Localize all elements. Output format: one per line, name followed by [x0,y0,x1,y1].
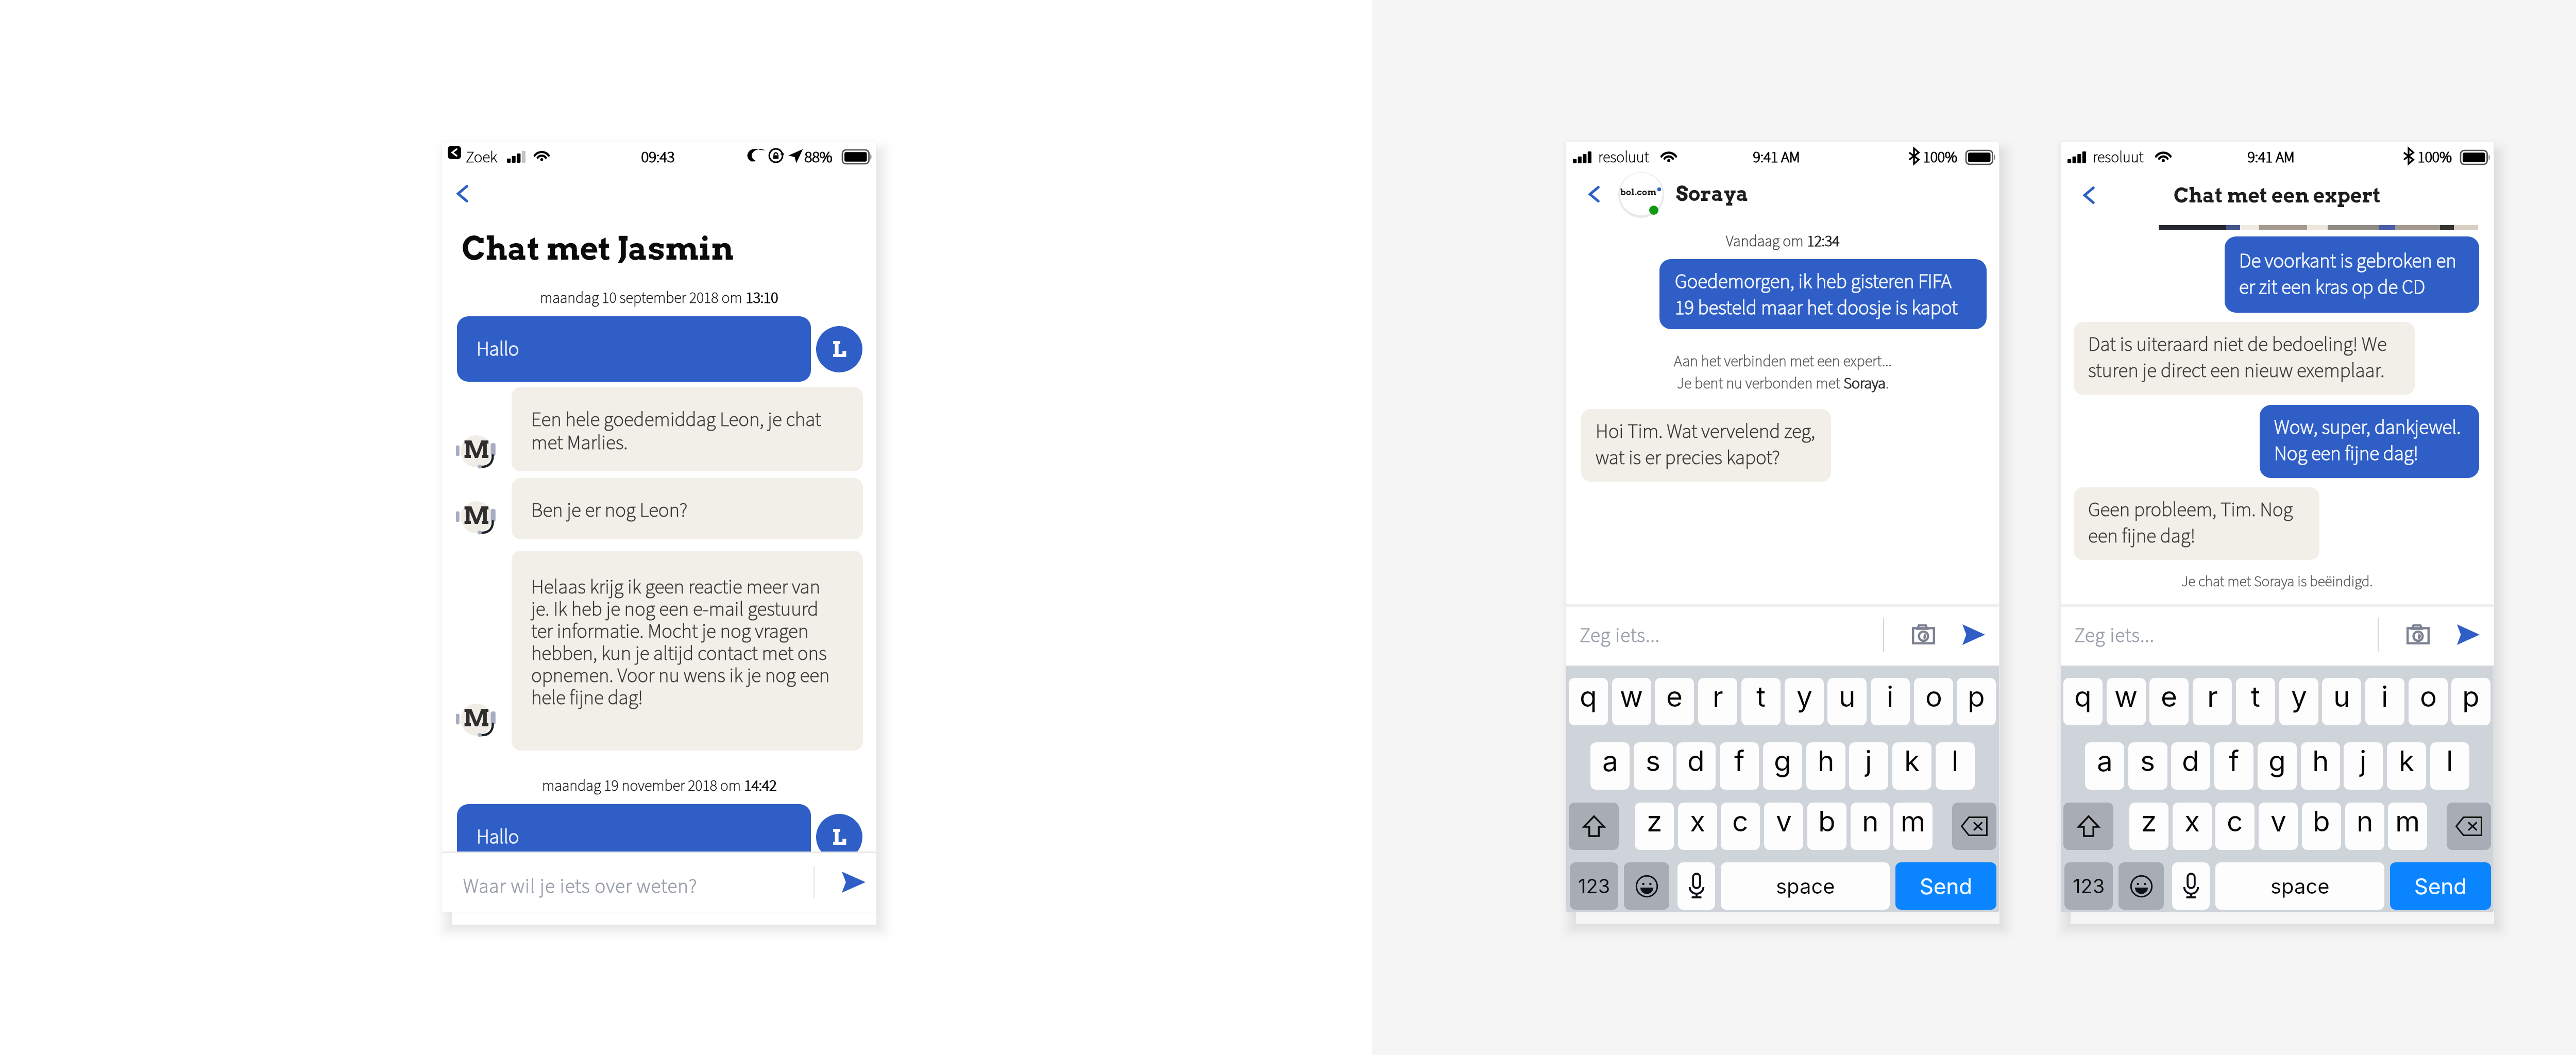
staticText: M [463,436,490,464]
button[interactable]: t [1741,678,1781,725]
button[interactable]: y [1785,678,1824,725]
staticText: y [1797,679,1812,714]
button[interactable]: s [1634,742,1673,790]
button[interactable]: v [2259,803,2298,850]
button[interactable]: Emoji [1624,862,1669,910]
button[interactable]: Shift [1569,803,1619,850]
button[interactable]: i [1871,678,1910,725]
button[interactable]: e [1655,678,1694,725]
button[interactable]: a [1590,742,1630,790]
button[interactable]: space [1721,862,1890,910]
button[interactable]: 123 [1570,862,1618,910]
button[interactable]: Ben je er nog Leon? [512,478,863,539]
button[interactable]: r [1698,678,1737,725]
button[interactable]: Send [1895,862,1996,910]
button[interactable]: m [2388,803,2427,850]
button[interactable]: Back [1578,178,1610,210]
button[interactable]: e [2149,678,2189,725]
button[interactable]: Hallo [457,804,811,870]
button[interactable]: l [2430,742,2469,790]
button[interactable]: q [2063,678,2103,725]
button[interactable]: n [2345,803,2384,850]
button[interactable]: De voorkant is gebroken en er zit een kr… [2225,236,2479,313]
button[interactable]: Emoji [2119,862,2164,910]
button[interactable]: Camera [1907,619,1940,651]
button[interactable]: v [1764,803,1803,850]
staticText: Vandaag om [1726,230,1807,252]
button[interactable]: 123 [2064,862,2113,910]
button[interactable]: u [1827,678,1867,725]
staticText: Send [1920,873,1972,899]
button[interactable]: w [1612,678,1651,725]
button[interactable]: Send [836,866,872,898]
button[interactable]: Wow, super, dankjewel. Nog een fijne dag… [2260,405,2479,478]
staticText: 9:41 AM [1753,146,1801,168]
button[interactable]: c [2215,803,2255,850]
button[interactable]: k [2387,742,2426,790]
button[interactable]: Een hele goedemiddag Leon, je chat met M… [512,387,863,471]
button[interactable]: c [1721,803,1760,850]
button[interactable]: o [1914,678,1953,725]
staticText: n [2357,804,2374,839]
button[interactable]: x [1678,803,1717,850]
staticText: 123 [2073,874,2105,898]
button[interactable]: b [1807,803,1846,850]
button[interactable]: Dictate [1677,862,1715,910]
button[interactable]: g [2258,742,2297,790]
button[interactable]: z [1635,803,1674,850]
button[interactable]: k [1892,742,1931,790]
button[interactable]: j [1849,742,1888,790]
button[interactable]: p [2451,678,2490,725]
button[interactable]: p [1957,678,1996,725]
button[interactable]: Goedemorgen, ik heb gisteren FIFA 19 bes… [1659,259,1987,329]
staticText: 13:10 [746,287,778,309]
button[interactable]: m [1893,803,1933,850]
button[interactable]: Send [1956,619,1992,651]
staticText: x [2184,804,2200,839]
button[interactable]: a [2085,742,2124,790]
staticText: 100% [1923,146,1958,168]
button[interactable]: o [2409,678,2448,725]
button[interactable]: d [2171,742,2210,790]
button[interactable]: d [1676,742,1716,790]
button[interactable]: Backspace [2447,803,2491,850]
button[interactable]: Back [446,178,478,210]
button[interactable]: Send [2390,862,2491,910]
button[interactable]: j [2344,742,2383,790]
staticText: i [1887,679,1894,714]
button[interactable]: i [2365,678,2404,725]
button[interactable]: Back [2073,179,2105,211]
button[interactable]: h [2301,742,2340,790]
button[interactable]: f [1720,742,1759,790]
staticText: b [2313,804,2330,839]
button[interactable]: l [1936,742,1975,790]
button[interactable]: w [2107,678,2146,725]
button[interactable]: Backspace [1952,803,1996,850]
button[interactable]: Dat is uiteraard niet de bedoeling! We s… [2074,322,2415,395]
staticText: 100% [1923,146,1957,168]
button[interactable]: t [2236,678,2275,725]
button[interactable]: g [1763,742,1802,790]
button[interactable]: Dictate [2172,862,2210,910]
button[interactable]: h [1806,742,1845,790]
button[interactable]: Helaas krijg ik geen reactie meer van je… [512,551,863,751]
staticText: c [2227,804,2243,839]
button[interactable]: n [1851,803,1890,850]
button[interactable]: f [2214,742,2253,790]
button[interactable]: r [2193,678,2232,725]
button[interactable]: Hallo [457,316,811,382]
button[interactable]: b [2302,803,2341,850]
button[interactable]: q [1569,678,1608,725]
button[interactable]: Geen probleem, Tim. Nog een fijne dag! [2074,487,2319,560]
button[interactable]: Hoi Tim. Wat vervelend zeg, wat is er pr… [1581,409,1831,482]
button[interactable]: y [2279,678,2318,725]
button[interactable]: space [2215,862,2384,910]
button[interactable]: x [2173,803,2212,850]
button[interactable]: Shift [2063,803,2113,850]
button[interactable]: Camera [2401,619,2434,651]
button[interactable]: z [2129,803,2168,850]
button[interactable]: u [2322,678,2361,725]
button[interactable]: s [2128,742,2167,790]
button[interactable]: Send [2450,619,2486,651]
staticText: Goedemorgen, ik heb gisteren FIFA 19 bes… [1675,267,1958,322]
